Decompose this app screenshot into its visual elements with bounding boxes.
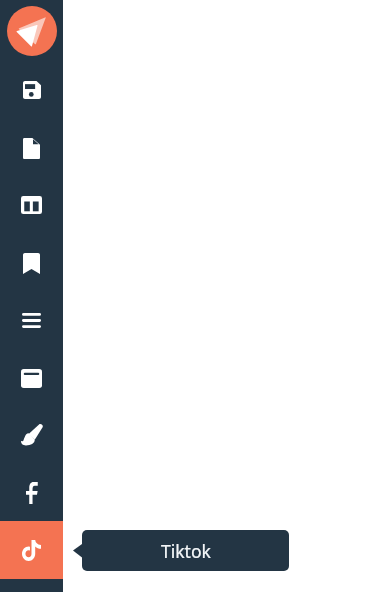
button[interactable]: Facebook xyxy=(0,464,63,522)
button[interactable]: Home xyxy=(0,0,63,61)
button[interactable]: Tiktok xyxy=(0,521,63,579)
button[interactable]: Themes xyxy=(0,406,63,464)
staticText: Tiktok xyxy=(161,539,211,563)
button[interactable]: Layout xyxy=(0,176,63,234)
button[interactable]: Tiktok xyxy=(82,530,289,571)
button[interactable]: Bookmarks xyxy=(0,234,63,292)
button[interactable]: Documents xyxy=(0,119,63,177)
button[interactable]: Menu xyxy=(0,291,63,349)
button[interactable]: Save xyxy=(0,61,63,119)
button[interactable]: Browser xyxy=(0,349,63,407)
